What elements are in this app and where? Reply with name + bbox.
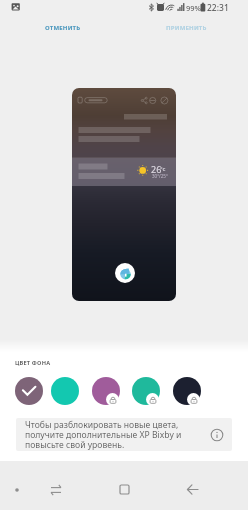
- button[interactable]: Background colour: [51, 377, 79, 405]
- button[interactable]: Back: [172, 469, 213, 510]
- button[interactable]: Recent apps: [104, 469, 145, 510]
- staticText: 22:31: [207, 2, 229, 14]
- button[interactable]: Bixby: [115, 263, 135, 283]
- staticText: ПРИМЕНИТЬ: [166, 24, 207, 32]
- staticText: 26: [151, 163, 162, 175]
- button[interactable]: ПРИМЕНИТЬ: [154, 17, 219, 39]
- button[interactable]: Menu: [0, 469, 33, 510]
- button[interactable]: Background colour: [15, 377, 43, 405]
- staticText: ЦВЕТ ФОНА: [15, 359, 51, 367]
- staticText: ОТМЕНИТЬ: [45, 24, 81, 32]
- button[interactable]: Background colour: [132, 377, 160, 405]
- button[interactable]: Чтобы разблокировать новые цвета, получи…: [16, 418, 232, 451]
- staticText: 99%: [186, 3, 201, 13]
- button[interactable]: Background colour: [173, 377, 201, 405]
- button[interactable]: Background colour: [92, 377, 120, 405]
- button[interactable]: ОТМЕНИТЬ: [33, 17, 93, 39]
- staticText: °c: [160, 165, 166, 173]
- staticText: 30°/25°: [152, 173, 168, 179]
- other: Info: [210, 428, 224, 442]
- button[interactable]: Switch keyboard: [37, 469, 74, 510]
- staticText: Чтобы разблокировать новые цвета, получи…: [25, 419, 182, 450]
